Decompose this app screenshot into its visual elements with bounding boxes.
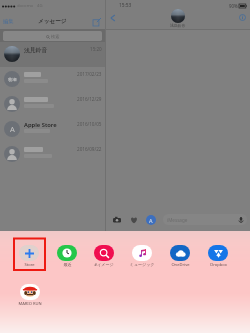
staticText: ミュージック: [129, 262, 155, 267]
button[interactable]: OneDrive: [162, 245, 198, 268]
button[interactable]: 検索: [3, 31, 102, 41]
staticText: 検索: [51, 34, 60, 39]
staticText: メッセージ: [38, 18, 67, 25]
staticText: Dropbox: [210, 262, 227, 268]
button[interactable]: MARIO RUN: [12, 284, 48, 307]
staticText: 2016/12/29: [77, 96, 102, 102]
button[interactable]: 最近: [49, 245, 85, 267]
button[interactable]: Back: [107, 12, 118, 23]
button[interactable]: 浅見鈴音: [0, 42, 105, 67]
button[interactable]: iMessage: [163, 214, 247, 225]
staticText: MARIO RUN: [18, 301, 42, 307]
button[interactable]: 2016/09/22: [0, 142, 105, 167]
button[interactable]: Details: [237, 12, 248, 23]
staticText: 90%: [229, 3, 238, 9]
button[interactable]: Digital Touch: [128, 214, 140, 226]
staticText: 15:20: [90, 46, 102, 52]
staticText: Store: [24, 262, 35, 268]
button[interactable]: A: [0, 117, 105, 142]
staticText: docomo: [17, 3, 34, 9]
staticText: 編集: [3, 18, 14, 25]
button[interactable]: New message: [91, 16, 102, 27]
button[interactable]: Camera: [111, 214, 123, 226]
staticText: 15:53: [119, 2, 132, 9]
staticText: 4G: [37, 3, 43, 9]
button[interactable]: 編集: [2, 16, 15, 27]
staticText: 浅見鈴音: [170, 23, 186, 28]
staticText: #イメージ: [94, 262, 114, 268]
staticText: iMessage: [167, 217, 188, 223]
staticText: OneDrive: [171, 262, 190, 268]
button[interactable]: 牧瀬: [0, 67, 105, 92]
button[interactable]: Dropbox: [200, 245, 236, 268]
button[interactable]: 2016/12/29: [0, 92, 105, 117]
staticText: Apple Store: [24, 121, 57, 129]
staticText: 最近: [63, 262, 72, 267]
staticText: 牧瀬: [8, 77, 17, 82]
staticText: 浅見鈴音: [24, 46, 48, 53]
staticText: 2016/10/05: [77, 121, 102, 127]
button[interactable]: App Store: [145, 214, 157, 226]
button[interactable]: Store: [11, 245, 47, 268]
button[interactable]: ミュージック: [124, 245, 160, 267]
staticText: 2017/02/23: [77, 71, 102, 77]
staticText: 2016/09/22: [77, 146, 102, 152]
button[interactable]: #イメージ: [86, 245, 122, 268]
staticText: A: [10, 124, 15, 134]
staticText: A: [149, 217, 153, 224]
